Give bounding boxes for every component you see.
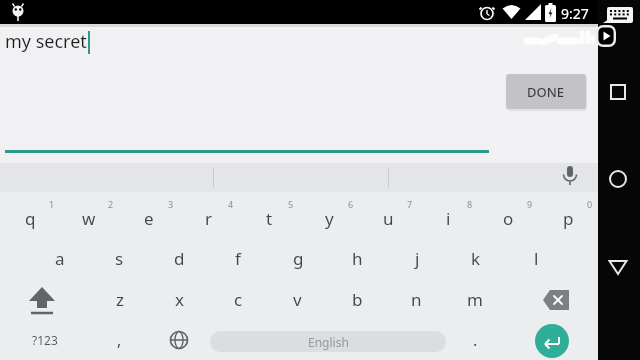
button[interactable]: c	[210, 279, 266, 319]
staticText: p	[563, 207, 574, 230]
staticText: 6	[348, 198, 354, 210]
button[interactable]: n	[388, 279, 444, 319]
button[interactable]: y	[301, 198, 357, 238]
button[interactable]	[604, 78, 632, 106]
button[interactable]	[530, 278, 586, 318]
staticText: f	[235, 247, 241, 270]
staticText: n	[411, 288, 422, 311]
staticText: English	[308, 334, 349, 350]
staticText: ,	[117, 329, 122, 351]
staticText: 1	[49, 198, 55, 210]
staticText: b	[352, 288, 363, 311]
button[interactable]: v	[269, 279, 325, 319]
button[interactable]: DONE	[506, 74, 586, 109]
staticText: 2	[108, 198, 114, 210]
button[interactable]: a	[32, 238, 88, 278]
staticText: a	[55, 247, 65, 270]
staticText: m	[467, 288, 483, 311]
staticText: x	[175, 288, 184, 311]
button[interactable]: z	[92, 279, 148, 319]
button[interactable]	[535, 324, 569, 358]
button[interactable]	[14, 277, 70, 317]
button[interactable]: b	[329, 279, 385, 319]
button[interactable]: .	[447, 320, 503, 360]
staticText: w	[82, 207, 96, 230]
staticText: e	[144, 207, 154, 230]
button[interactable]: ,	[91, 320, 147, 360]
staticText: d	[174, 247, 185, 270]
button[interactable]: w	[61, 198, 117, 238]
button[interactable]: d	[151, 238, 207, 278]
staticText: r	[205, 207, 213, 230]
staticText: i	[446, 207, 451, 230]
button[interactable]	[562, 166, 578, 188]
staticText: 0	[587, 198, 593, 210]
staticText: 7	[407, 198, 413, 210]
button[interactable]: u	[360, 198, 416, 238]
button[interactable]: k	[448, 238, 504, 278]
staticText: 9:27	[561, 4, 589, 23]
button[interactable]	[604, 253, 632, 281]
staticText: c	[234, 288, 243, 311]
button[interactable]: g	[270, 238, 326, 278]
button[interactable]	[604, 165, 632, 193]
staticText: o	[503, 207, 514, 230]
staticText: q	[25, 207, 36, 230]
staticText: 8	[467, 198, 473, 210]
button[interactable]: f	[210, 238, 266, 278]
staticText: 5	[288, 198, 294, 210]
staticText: j	[415, 247, 420, 270]
staticText: k	[471, 247, 481, 270]
button[interactable]: p	[540, 198, 596, 238]
button[interactable]: ?123	[17, 320, 73, 360]
staticText: ?123	[32, 332, 58, 348]
button[interactable]: l	[508, 238, 564, 278]
button[interactable]: o	[480, 198, 536, 238]
staticText: 9	[527, 198, 533, 210]
staticText: 3	[168, 198, 174, 210]
button[interactable]: r	[181, 198, 237, 238]
button[interactable]: i	[420, 198, 476, 238]
button[interactable]: e	[121, 198, 177, 238]
staticText: g	[293, 247, 304, 270]
staticText: u	[383, 207, 394, 230]
button[interactable]: English	[210, 331, 446, 352]
button[interactable]	[151, 320, 207, 360]
button[interactable]: t	[241, 198, 297, 238]
staticText: s	[115, 247, 124, 270]
button[interactable]: q	[2, 198, 58, 238]
staticText: t	[266, 207, 273, 230]
button[interactable]: j	[389, 238, 445, 278]
staticText: l	[534, 247, 539, 270]
staticText: y	[325, 207, 334, 230]
staticText: .	[473, 329, 478, 351]
staticText: my secret	[5, 29, 87, 54]
staticText: 4	[228, 198, 234, 210]
button[interactable]: m	[447, 279, 503, 319]
button[interactable]	[603, 7, 633, 25]
staticText: DONE	[527, 83, 565, 101]
button[interactable]: x	[151, 279, 207, 319]
staticText: v	[293, 288, 302, 311]
staticText: z	[116, 288, 124, 311]
staticText: h	[352, 247, 363, 270]
button[interactable]: h	[329, 238, 385, 278]
button[interactable]: s	[91, 238, 147, 278]
